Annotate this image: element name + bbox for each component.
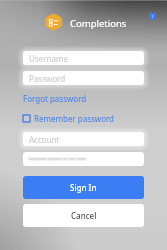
staticText: Cancel (71, 210, 97, 221)
button[interactable]: Cancel (23, 204, 144, 227)
staticText: Completions (70, 17, 127, 30)
button[interactable]: Forgot password (23, 93, 87, 104)
button[interactable] (23, 152, 144, 166)
staticText: Username (29, 53, 68, 64)
staticText: Password (29, 73, 66, 84)
button[interactable]: Password (23, 71, 144, 85)
button[interactable]: Remember password (23, 113, 115, 124)
button[interactable]: Account (23, 132, 144, 146)
staticText: Sign In (70, 182, 97, 193)
staticText: Account (29, 134, 60, 145)
staticText: Remember password (34, 113, 115, 124)
button[interactable]: Username (23, 51, 144, 65)
button[interactable]: Help (143, 6, 161, 24)
button[interactable]: Sign In (23, 176, 144, 199)
